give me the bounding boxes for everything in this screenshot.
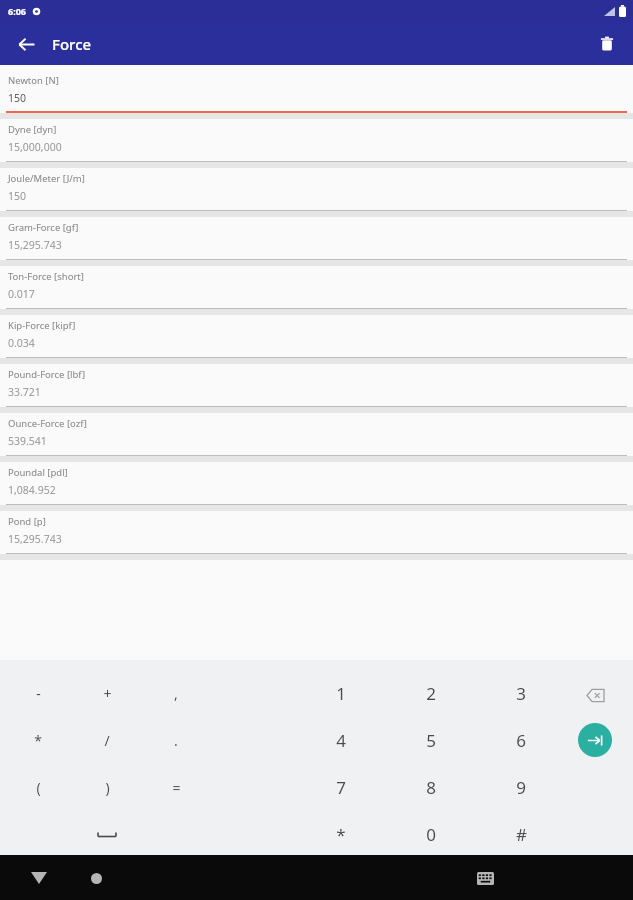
button[interactable]: Home xyxy=(79,861,113,895)
staticText: 5 xyxy=(426,729,436,752)
staticText: ( xyxy=(36,778,41,797)
staticText: . xyxy=(174,731,178,750)
staticText: Joule/Meter [J/m] xyxy=(8,172,85,185)
staticText: * xyxy=(336,823,346,846)
staticText: * xyxy=(34,731,42,750)
staticText: Ounce-Force [ozf] xyxy=(8,417,87,430)
button[interactable]: 0 xyxy=(401,812,461,856)
staticText: 1,084.952 xyxy=(8,483,56,497)
staticText: - xyxy=(36,684,41,703)
button[interactable]: 5 xyxy=(401,718,461,762)
button[interactable]: 9 xyxy=(491,765,551,809)
staticText: 6:06 xyxy=(8,5,26,17)
button[interactable]: - xyxy=(10,671,66,715)
staticText: 0 xyxy=(426,823,436,846)
button[interactable]: + xyxy=(79,671,135,715)
staticText: Poundal [pdl] xyxy=(8,466,68,479)
staticText: 15,295.743 xyxy=(8,532,62,546)
staticText: 6 xyxy=(516,729,526,752)
button[interactable]: 8 xyxy=(401,765,461,809)
button[interactable]: * xyxy=(311,812,371,856)
button[interactable]: 4 xyxy=(311,718,371,762)
button[interactable]: Conversion table xyxy=(573,668,619,714)
staticText: 0.017 xyxy=(8,287,35,301)
staticText: Force xyxy=(52,34,92,54)
button[interactable]: 6 xyxy=(491,718,551,762)
button[interactable]: = xyxy=(148,765,204,809)
button[interactable]: 2 xyxy=(401,671,461,715)
button[interactable]: * xyxy=(10,718,66,762)
staticText: ) xyxy=(105,778,110,797)
button[interactable]: Back xyxy=(10,28,42,60)
staticText: 15,000,000 xyxy=(8,140,62,154)
staticText: 150 xyxy=(8,189,27,203)
staticText: , xyxy=(174,684,178,703)
button[interactable]: ( xyxy=(10,765,66,809)
button[interactable]: Delete xyxy=(591,28,623,60)
staticText: 2 xyxy=(426,682,436,705)
staticText: 15,295.743 xyxy=(8,238,62,252)
button[interactable]: / xyxy=(79,718,135,762)
button[interactable]: . xyxy=(148,718,204,762)
staticText: Pond [p] xyxy=(8,515,46,528)
staticText: # xyxy=(516,823,527,846)
staticText: 3 xyxy=(516,682,526,705)
staticText: Dyne [dyn] xyxy=(8,123,57,136)
staticText: Pound-Force [lbf] xyxy=(8,368,86,381)
staticText: 33.721 xyxy=(8,385,41,399)
button[interactable]: Backspace xyxy=(579,679,611,711)
staticText: Gram-Force [gf] xyxy=(8,221,79,234)
button[interactable]: # xyxy=(491,812,551,856)
staticText: 4 xyxy=(336,729,346,752)
button[interactable]: Back xyxy=(22,861,56,895)
staticText: 150 xyxy=(8,91,27,105)
staticText: Ton-Force [short] xyxy=(8,270,84,283)
button[interactable]: 3 xyxy=(491,671,551,715)
staticText: 1 xyxy=(336,682,346,705)
button[interactable]: 1 xyxy=(311,671,371,715)
staticText: 0.034 xyxy=(8,336,35,350)
staticText: Newton [N] xyxy=(8,74,59,87)
staticText: 8 xyxy=(426,776,436,799)
button[interactable] xyxy=(79,812,135,856)
staticText: / xyxy=(104,731,110,750)
button[interactable]: ) xyxy=(79,765,135,809)
staticText: 9 xyxy=(516,776,526,799)
staticText: 7 xyxy=(336,776,346,799)
staticText: = xyxy=(172,778,181,797)
staticText: + xyxy=(103,684,112,703)
staticText: 539.541 xyxy=(8,434,47,448)
button[interactable]: 7 xyxy=(311,765,371,809)
button[interactable]: Next xyxy=(578,723,612,757)
staticText: Kip-Force [kipf] xyxy=(8,319,76,332)
button[interactable]: Switch keyboard xyxy=(468,861,502,895)
button[interactable]: , xyxy=(148,671,204,715)
